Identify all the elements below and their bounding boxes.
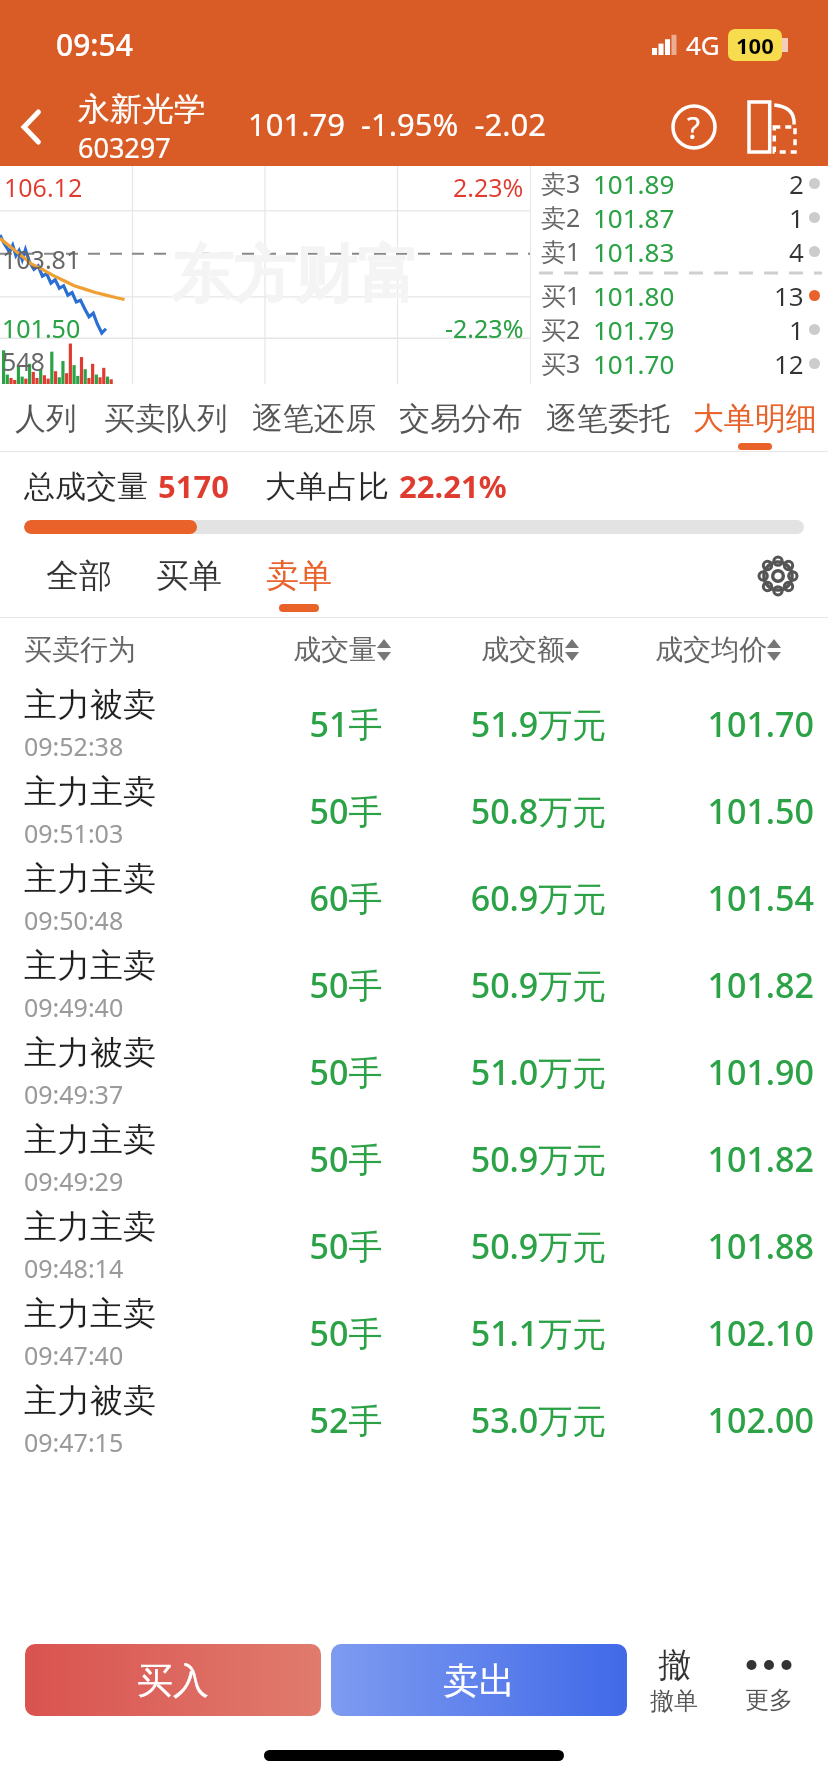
button[interactable]: 卖2 <box>531 200 828 234</box>
staticText: 4G <box>686 27 720 62</box>
staticText: 卖3 <box>541 166 581 200</box>
button[interactable]: Layout <box>740 95 804 159</box>
staticText: 买单 <box>156 555 222 597</box>
staticText: 102.10 <box>635 1310 814 1356</box>
staticText: 50手 <box>250 1136 442 1182</box>
button[interactable]: 成交额 <box>438 632 622 667</box>
staticText: 101.80 <box>593 278 774 312</box>
staticText: 50手 <box>250 1310 442 1356</box>
staticText: 51手 <box>250 701 442 747</box>
staticText: 09:49:40 <box>24 990 124 1024</box>
staticText: 51.1万元 <box>442 1310 635 1356</box>
button[interactable]: 大单明细 <box>681 384 828 452</box>
staticText: 101.87 <box>593 200 789 234</box>
staticText: 逐笔委托 <box>546 399 670 438</box>
staticText: 101.70 <box>635 701 814 747</box>
staticText: 53.0万元 <box>442 1397 635 1443</box>
staticText: 逐笔还原 <box>252 399 376 438</box>
staticText: 101.89 <box>593 166 789 200</box>
button[interactable]: 卖1 <box>531 234 828 268</box>
staticText: 4 <box>789 234 804 268</box>
button[interactable]: 成交均价 <box>626 632 810 667</box>
staticText: 成交额 <box>481 632 565 667</box>
staticText: 51.9万元 <box>442 701 635 747</box>
button[interactable]: 主力被卖 <box>0 1028 828 1115</box>
staticText: 买卖行为 <box>24 632 250 667</box>
button[interactable]: 买卖队列 <box>92 384 240 452</box>
staticText: 成交量 <box>293 632 377 667</box>
staticText: 09:50:48 <box>24 903 124 937</box>
staticText: 1 <box>789 312 804 346</box>
staticText: 103.81 <box>2 242 81 276</box>
button[interactable]: 成交量 <box>250 632 434 667</box>
staticText: 603297 <box>78 129 171 166</box>
button[interactable]: 人列 <box>0 384 92 452</box>
staticText: 101.70 <box>593 346 774 380</box>
staticText: -2.23% <box>445 311 524 345</box>
button[interactable]: Back <box>0 94 66 160</box>
staticText: 101.90 <box>635 1049 814 1095</box>
staticText: 101.54 <box>635 875 814 921</box>
staticText: 09:48:14 <box>24 1251 124 1285</box>
staticText: 09:49:37 <box>24 1077 124 1111</box>
button[interactable]: 买入 <box>25 1644 321 1716</box>
staticText: 主力主卖 <box>24 858 156 900</box>
staticText: 09:49:29 <box>24 1164 124 1198</box>
staticText: 1 <box>789 200 804 234</box>
button[interactable]: 全部 <box>24 534 134 618</box>
staticText: 101.82 <box>635 962 814 1008</box>
staticText: 5170 <box>158 465 229 507</box>
button[interactable]: 主力主卖 <box>0 1202 828 1289</box>
staticText: 主力被卖 <box>24 1380 156 1422</box>
staticText: 买入 <box>137 1658 209 1703</box>
staticText: 50.8万元 <box>442 788 635 834</box>
staticText: 人列 <box>15 399 77 438</box>
staticText: 09:47:15 <box>24 1425 124 1459</box>
staticText: 102.00 <box>635 1397 814 1443</box>
staticText: 09:47:40 <box>24 1338 124 1372</box>
button[interactable]: 卖3 <box>531 166 828 200</box>
staticText: 卖1 <box>541 234 581 268</box>
staticText: 主力主卖 <box>24 771 156 813</box>
button[interactable]: 买1 <box>531 278 828 312</box>
staticText: 东方财富 <box>171 236 419 314</box>
button[interactable]: 主力主卖 <box>0 941 828 1028</box>
staticText: 买2 <box>541 312 581 346</box>
staticText: 09:52:38 <box>24 729 124 763</box>
button[interactable]: 卖单 <box>244 534 354 618</box>
staticText: 100 <box>736 30 774 60</box>
staticText: 101.50 <box>2 311 81 345</box>
staticText: 2.23% <box>453 170 524 204</box>
button[interactable]: 交易分布 <box>387 384 534 452</box>
button[interactable]: 主力主卖 <box>0 767 828 854</box>
button[interactable]: 撤 <box>627 1630 721 1730</box>
button[interactable]: Settings <box>750 548 806 604</box>
staticText: 09:51:03 <box>24 816 124 850</box>
staticText: 50手 <box>250 1049 442 1095</box>
button[interactable]: 卖出 <box>331 1644 627 1716</box>
staticText: 撤 <box>658 1644 691 1686</box>
staticText: 101.88 <box>635 1223 814 1269</box>
staticText: 买卖队列 <box>104 399 228 438</box>
button[interactable]: 买2 <box>531 312 828 346</box>
staticText: 50手 <box>250 962 442 1008</box>
button[interactable]: 逐笔还原 <box>240 384 387 452</box>
button[interactable]: 买3 <box>531 346 828 380</box>
button[interactable]: 主力被卖 <box>0 1376 828 1463</box>
button[interactable]: 主力主卖 <box>0 1289 828 1376</box>
staticText: 主力主卖 <box>24 1206 156 1248</box>
staticText: 主力被卖 <box>24 684 156 726</box>
staticText: 主力主卖 <box>24 945 156 987</box>
button[interactable]: 主力被卖 <box>0 680 828 767</box>
staticText: ? <box>687 107 701 148</box>
button[interactable]: 买单 <box>134 534 244 618</box>
staticText: 101.50 <box>635 788 814 834</box>
staticText: 大单明细 <box>693 399 817 438</box>
button[interactable]: 主力主卖 <box>0 1115 828 1202</box>
button[interactable]: 主力主卖 <box>0 854 828 941</box>
button[interactable]: 更多 <box>721 1630 816 1730</box>
staticText: 50.9万元 <box>442 1223 635 1269</box>
button[interactable]: 逐笔委托 <box>534 384 681 452</box>
staticText: 101.82 <box>635 1136 814 1182</box>
button[interactable]: Help <box>662 95 726 159</box>
